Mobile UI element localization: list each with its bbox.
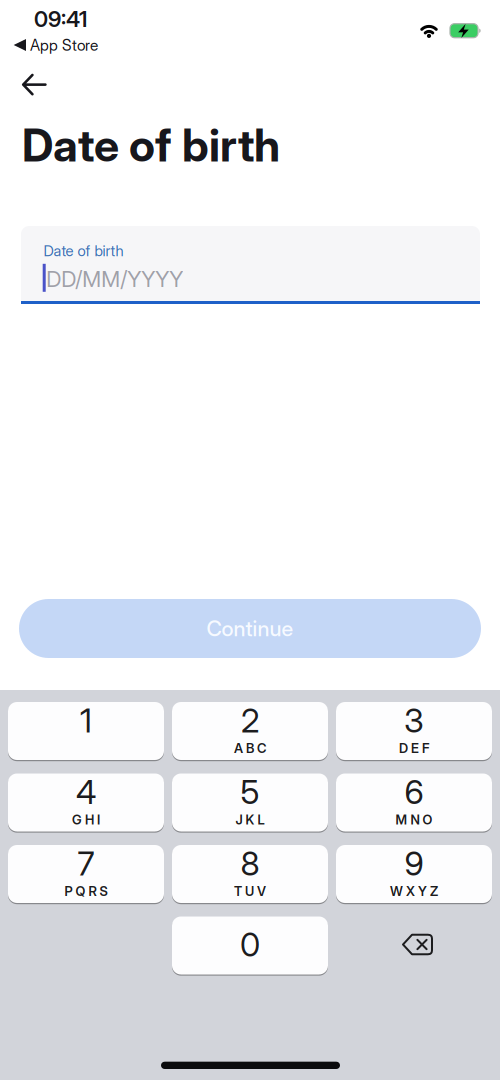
staticText: 6: [404, 772, 423, 812]
staticText: 5: [240, 772, 259, 812]
button[interactable]: 9: [336, 845, 492, 903]
staticText: 4: [76, 772, 96, 812]
button[interactable]: Delete: [336, 916, 492, 974]
staticText: 8: [240, 843, 259, 883]
staticText: Continue: [206, 616, 293, 641]
staticText: D E F: [399, 740, 429, 756]
staticText: Date of birth: [22, 118, 280, 172]
button[interactable]: 0: [172, 916, 328, 974]
staticText: A B C: [234, 740, 266, 756]
button[interactable]: 5: [172, 773, 328, 831]
staticText: 7: [77, 843, 94, 883]
staticText: Date of birth: [43, 242, 123, 260]
staticText: W X Y Z: [390, 883, 438, 899]
button[interactable]: 6: [336, 773, 492, 831]
button[interactable]: App Store: [13, 36, 123, 56]
staticText: G H I: [72, 812, 100, 828]
staticText: 9: [404, 843, 423, 883]
staticText: DD/MM/YYYY: [46, 266, 183, 292]
button[interactable]: Date of birth: [21, 226, 480, 304]
staticText: T U V: [234, 883, 266, 899]
button[interactable]: Back: [12, 66, 56, 104]
staticText: J K L: [235, 812, 264, 828]
button[interactable]: 2: [172, 702, 328, 760]
button[interactable]: Continue: [19, 599, 481, 658]
staticText: 1: [80, 700, 92, 740]
staticText: M N O: [395, 812, 432, 828]
staticText: P Q R S: [64, 883, 107, 899]
button[interactable]: 4: [8, 773, 164, 831]
staticText: 2: [241, 700, 259, 740]
button[interactable]: 1: [8, 702, 164, 760]
staticText: 0: [240, 924, 260, 964]
button[interactable]: 3: [336, 702, 492, 760]
button[interactable]: 8: [172, 845, 328, 903]
staticText: 3: [404, 700, 424, 740]
staticText: 09:41: [34, 6, 87, 32]
button[interactable]: 7: [8, 845, 164, 903]
staticText: App Store: [30, 36, 98, 54]
